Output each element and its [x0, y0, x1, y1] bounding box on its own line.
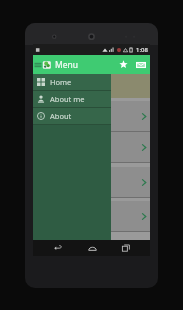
button[interactable]: reduce an we name ions Go... — [33, 101, 150, 131]
staticText: Home — [50, 77, 72, 87]
button[interactable]: About me — [33, 91, 111, 107]
button[interactable]: peehunt.com e earning & offers ... — [33, 167, 150, 197]
staticText: 1:08 — [136, 46, 148, 54]
staticText: ave a a then you earn — [36, 137, 141, 157]
staticText: peehunt.com e earning & offers ... — [36, 172, 141, 192]
staticText: About me — [50, 94, 85, 104]
staticText: Do you ku then you money by — [36, 206, 141, 226]
button[interactable]: Back — [47, 240, 67, 256]
button[interactable]: Recent apps — [116, 240, 136, 256]
staticText: reduce an we name ions Go... — [36, 106, 141, 126]
button[interactable]: Favorite — [115, 55, 132, 74]
button[interactable]: Open navigation drawer — [33, 55, 42, 74]
button[interactable]: Home — [82, 240, 102, 256]
button[interactable]: Home — [33, 74, 111, 90]
button[interactable]: About — [33, 108, 111, 124]
staticText: About — [50, 111, 72, 121]
staticText: Menu — [55, 59, 79, 71]
button[interactable]: ave a a then you earn — [33, 132, 150, 162]
button[interactable]: Messages — [132, 55, 149, 74]
button[interactable]: Do you ku then you money by — [33, 201, 150, 231]
